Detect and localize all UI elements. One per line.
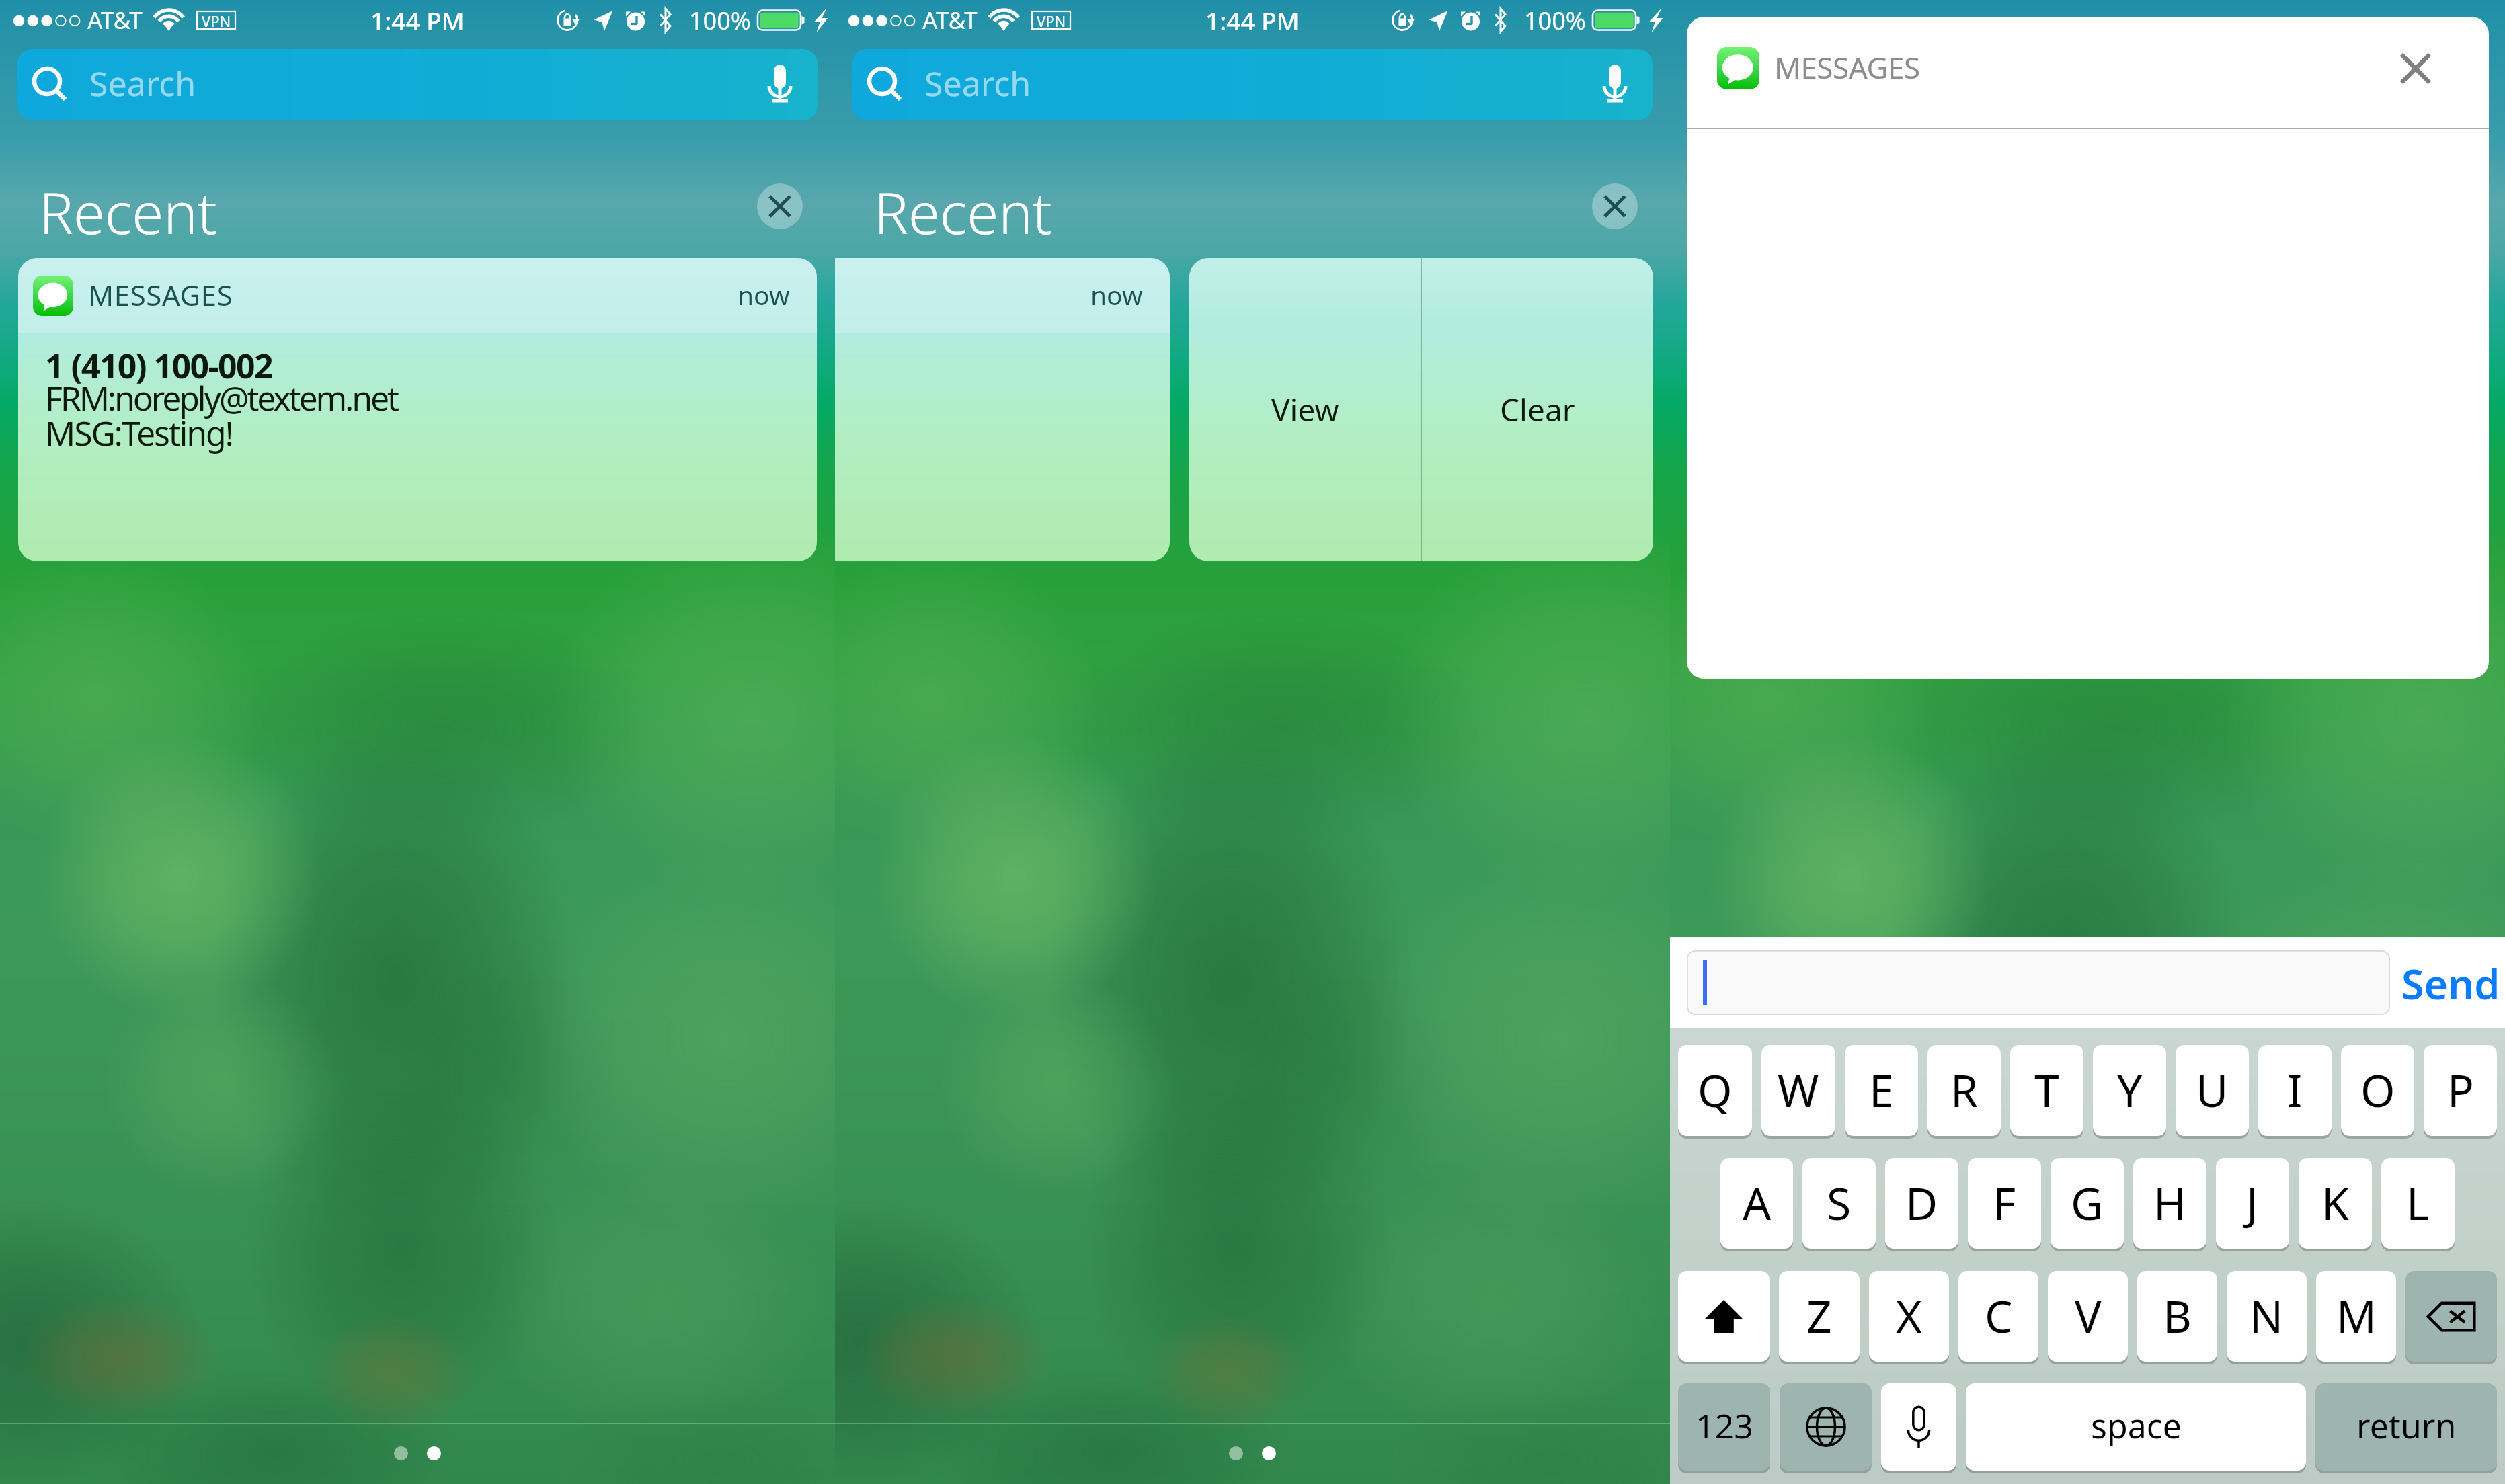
button[interactable]: U (2176, 1045, 2249, 1136)
staticText: Y (2117, 1059, 2143, 1120)
button[interactable]: T (2010, 1045, 2083, 1136)
staticText: VPN (1037, 11, 1066, 30)
button[interactable]: N (2227, 1271, 2307, 1362)
staticText: B (2163, 1285, 2192, 1346)
staticText: now (1090, 277, 1143, 313)
staticText: H (2153, 1172, 2186, 1233)
staticText: T (2034, 1059, 2059, 1120)
staticText: AT&T (922, 4, 978, 36)
staticText: M (2336, 1285, 2377, 1346)
button[interactable]: J (2216, 1158, 2289, 1249)
button[interactable]: Shift (1678, 1271, 1770, 1362)
staticText: U (2196, 1059, 2229, 1120)
other: Voice search (762, 67, 797, 102)
button[interactable]: Backspace (2405, 1271, 2497, 1362)
staticText: 123 (1696, 1403, 1753, 1448)
button[interactable]: 123 (1678, 1383, 1770, 1471)
button[interactable]: E (1845, 1045, 1918, 1136)
button[interactable]: Clear notifications (1592, 183, 1638, 229)
staticText: 1:44 PM (370, 3, 465, 37)
staticText: Recent (39, 173, 217, 240)
staticText: J (2246, 1172, 2259, 1233)
staticText: G (2071, 1172, 2104, 1233)
staticText: O (2360, 1059, 2395, 1120)
button[interactable]: MESSAGES (18, 258, 817, 561)
button[interactable]: P (2424, 1045, 2497, 1136)
staticText: R (1950, 1059, 1979, 1120)
staticText: F (1993, 1172, 2016, 1233)
staticText: I (2287, 1059, 2303, 1120)
button[interactable]: Q (1678, 1045, 1752, 1136)
staticText: View (1271, 388, 1339, 431)
staticText: X (1896, 1285, 1922, 1346)
button[interactable]: Next keyboard (1780, 1383, 1872, 1471)
staticText: L (2406, 1172, 2430, 1233)
staticText: FRM:noreply@textem.net (45, 375, 397, 421)
staticText: 100% (689, 4, 751, 37)
staticText: C (1985, 1285, 2013, 1346)
button[interactable]: Search (17, 49, 818, 120)
button[interactable]: Z (1779, 1271, 1860, 1362)
button[interactable]: F (1968, 1158, 2041, 1249)
other: Voice search (1597, 67, 1632, 102)
button[interactable]: W (1761, 1045, 1835, 1136)
button[interactable]: V (2048, 1271, 2128, 1362)
button[interactable]: B (2137, 1271, 2217, 1362)
button[interactable]: C (1958, 1271, 2038, 1362)
button[interactable]: D (1885, 1158, 1958, 1249)
staticText: 1:44 PM (1205, 3, 1300, 37)
button[interactable]: Send (2401, 956, 2500, 1012)
button[interactable]: View (1189, 258, 1421, 561)
button[interactable]: O (2341, 1045, 2414, 1136)
staticText: MSG:Testing! (45, 410, 233, 456)
staticText: 1 (410) 100-002 (45, 343, 272, 388)
button[interactable]: Close (2394, 47, 2437, 90)
staticText: 100% (1524, 4, 1586, 37)
staticText: Search (89, 60, 196, 106)
button[interactable]: L (2381, 1158, 2455, 1249)
staticText: now (738, 277, 790, 313)
button[interactable]: S (1802, 1158, 1876, 1249)
staticText: VPN (202, 11, 231, 30)
staticText: K (2321, 1172, 2349, 1233)
button[interactable]: space (1966, 1383, 2306, 1471)
button[interactable]: I (2258, 1045, 2332, 1136)
staticText: Q (1698, 1059, 1733, 1120)
staticText: MESSAGES (88, 276, 233, 314)
staticText: MESSAGES (1774, 47, 1920, 87)
staticText: W (1778, 1059, 1819, 1120)
button[interactable]: now (835, 258, 1170, 561)
button[interactable]: return (2315, 1383, 2497, 1471)
button[interactable]: A (1720, 1158, 1793, 1249)
staticText: D (1905, 1172, 1938, 1233)
staticText: P (2447, 1059, 2474, 1120)
staticText: S (1827, 1172, 1852, 1233)
button[interactable]: Dictate (1881, 1383, 1956, 1471)
button[interactable]: M (2316, 1271, 2396, 1362)
button[interactable]: R (1927, 1045, 2001, 1136)
staticText: V (2075, 1285, 2102, 1346)
staticText: E (1869, 1059, 1894, 1120)
button[interactable]: Search (852, 49, 1653, 120)
button[interactable]: K (2299, 1158, 2372, 1249)
button[interactable]: H (2133, 1158, 2206, 1249)
button[interactable]: G (2051, 1158, 2124, 1249)
staticText: N (2250, 1285, 2284, 1346)
staticText: Z (1806, 1285, 1832, 1346)
button[interactable]: Clear (1422, 258, 1653, 561)
staticText: Clear (1500, 388, 1575, 431)
button[interactable]: Clear notifications (757, 183, 803, 229)
button[interactable]: X (1869, 1271, 1949, 1362)
staticText: Recent (874, 173, 1052, 240)
staticText: return (2356, 1403, 2457, 1448)
staticText: Search (924, 60, 1031, 106)
staticText: A (1743, 1172, 1772, 1233)
staticText: AT&T (87, 4, 143, 36)
button[interactable]: Y (2093, 1045, 2166, 1136)
staticText: space (2091, 1403, 2182, 1448)
